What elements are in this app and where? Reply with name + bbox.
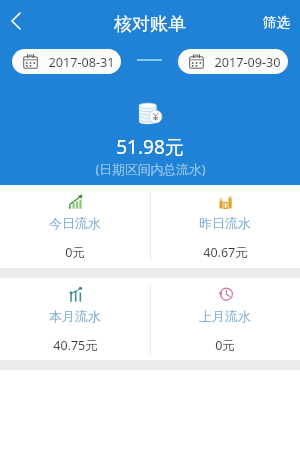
staticText: 本月流水 [49,308,101,324]
button[interactable]: 筛选 [253,8,300,37]
staticText: 0元 [65,244,85,261]
staticText: 2017-08-31 [48,53,115,70]
button[interactable]: 本月流水 [0,278,150,360]
staticText: 上月流水 [199,308,251,324]
staticText: 核对账单 [114,13,186,36]
button[interactable]: Back [0,5,32,37]
button[interactable]: 2017-08-31 [12,49,121,74]
button[interactable]: 2017-09-30 [178,49,288,74]
staticText: 51.98元 [116,134,184,160]
staticText: 今日流水 [49,215,101,231]
staticText: 0元 [215,337,235,354]
staticText: 2017-09-30 [214,53,281,70]
button[interactable]: 上月流水 [150,278,300,360]
button[interactable]: 昨日流水 [150,185,300,268]
button[interactable]: 今日流水 [0,185,150,268]
staticText: (日期区间内总流水) [95,160,206,177]
staticText: 昨日流水 [199,215,251,231]
staticText: 40.75元 [53,337,98,354]
staticText: 筛选 [263,14,290,31]
staticText: 40.67元 [203,244,248,261]
